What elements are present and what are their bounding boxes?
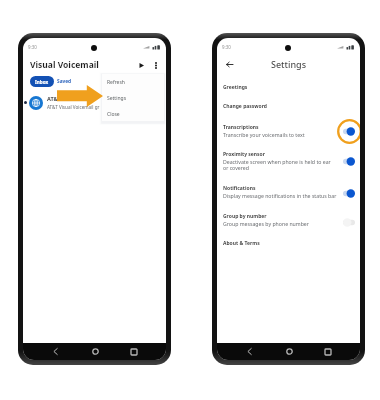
button[interactable]: Close bbox=[102, 106, 164, 122]
button[interactable]: Back bbox=[222, 57, 236, 71]
staticText: About & Terms bbox=[223, 240, 260, 247]
button[interactable]: About & Terms bbox=[217, 236, 360, 250]
button[interactable] bbox=[29, 96, 43, 110]
staticText: Deactivate screen when phone is held to … bbox=[223, 158, 337, 172]
button[interactable]: Saved bbox=[55, 76, 73, 87]
button[interactable]: Inbox bbox=[30, 76, 54, 87]
button[interactable]: Home bbox=[88, 343, 102, 360]
staticText: Display message notifications in the sta… bbox=[223, 192, 337, 199]
staticText: 9:30 bbox=[222, 44, 231, 50]
staticText: Group by number bbox=[223, 213, 267, 220]
staticText: Close bbox=[107, 111, 120, 118]
staticText: Settings bbox=[271, 58, 307, 70]
staticText: Change password bbox=[223, 103, 268, 110]
staticText: Group messages by phone number bbox=[223, 220, 309, 227]
button[interactable]: Home bbox=[282, 343, 296, 360]
button[interactable]: Greetings bbox=[217, 80, 360, 94]
button[interactable]: Settings bbox=[102, 90, 164, 106]
button[interactable]: Back bbox=[48, 343, 62, 360]
staticText: Visual Voicemail bbox=[30, 59, 99, 71]
staticText: Saved bbox=[57, 78, 72, 85]
button[interactable]: Change password bbox=[217, 99, 360, 113]
staticText: Refresh bbox=[107, 79, 125, 86]
staticText: Transcribe your voicemails to text bbox=[223, 131, 305, 138]
staticText: Inbox bbox=[35, 79, 49, 85]
staticText: Transcriptions bbox=[223, 124, 259, 131]
staticText: Proximity sensor bbox=[223, 151, 265, 158]
button[interactable]: Recent apps bbox=[321, 343, 335, 360]
staticText: Greetings bbox=[223, 84, 248, 91]
button[interactable]: Transcriptions bbox=[217, 124, 360, 138]
staticText: Notifications bbox=[223, 185, 256, 192]
button[interactable]: Refresh bbox=[102, 74, 164, 90]
button[interactable]: Group by number bbox=[217, 213, 360, 227]
button[interactable]: Back bbox=[242, 343, 256, 360]
staticText: 9:30 bbox=[28, 44, 37, 50]
button[interactable]: Toggle setting bbox=[334, 118, 360, 144]
button[interactable]: Recent apps bbox=[127, 343, 141, 360]
button[interactable]: Toggle setting bbox=[334, 180, 360, 206]
staticText: Settings bbox=[107, 95, 127, 102]
staticText: AT&T Visual Voicemail gr bbox=[47, 104, 100, 110]
button[interactable]: Toggle setting bbox=[334, 209, 360, 235]
button[interactable]: Play all bbox=[134, 58, 148, 72]
button[interactable]: Proximity sensor bbox=[217, 151, 360, 172]
button[interactable]: Toggle setting bbox=[334, 148, 360, 174]
staticText: AT&T bbox=[47, 95, 61, 103]
button[interactable]: Notifications bbox=[217, 185, 360, 199]
button[interactable]: More options bbox=[149, 58, 163, 72]
